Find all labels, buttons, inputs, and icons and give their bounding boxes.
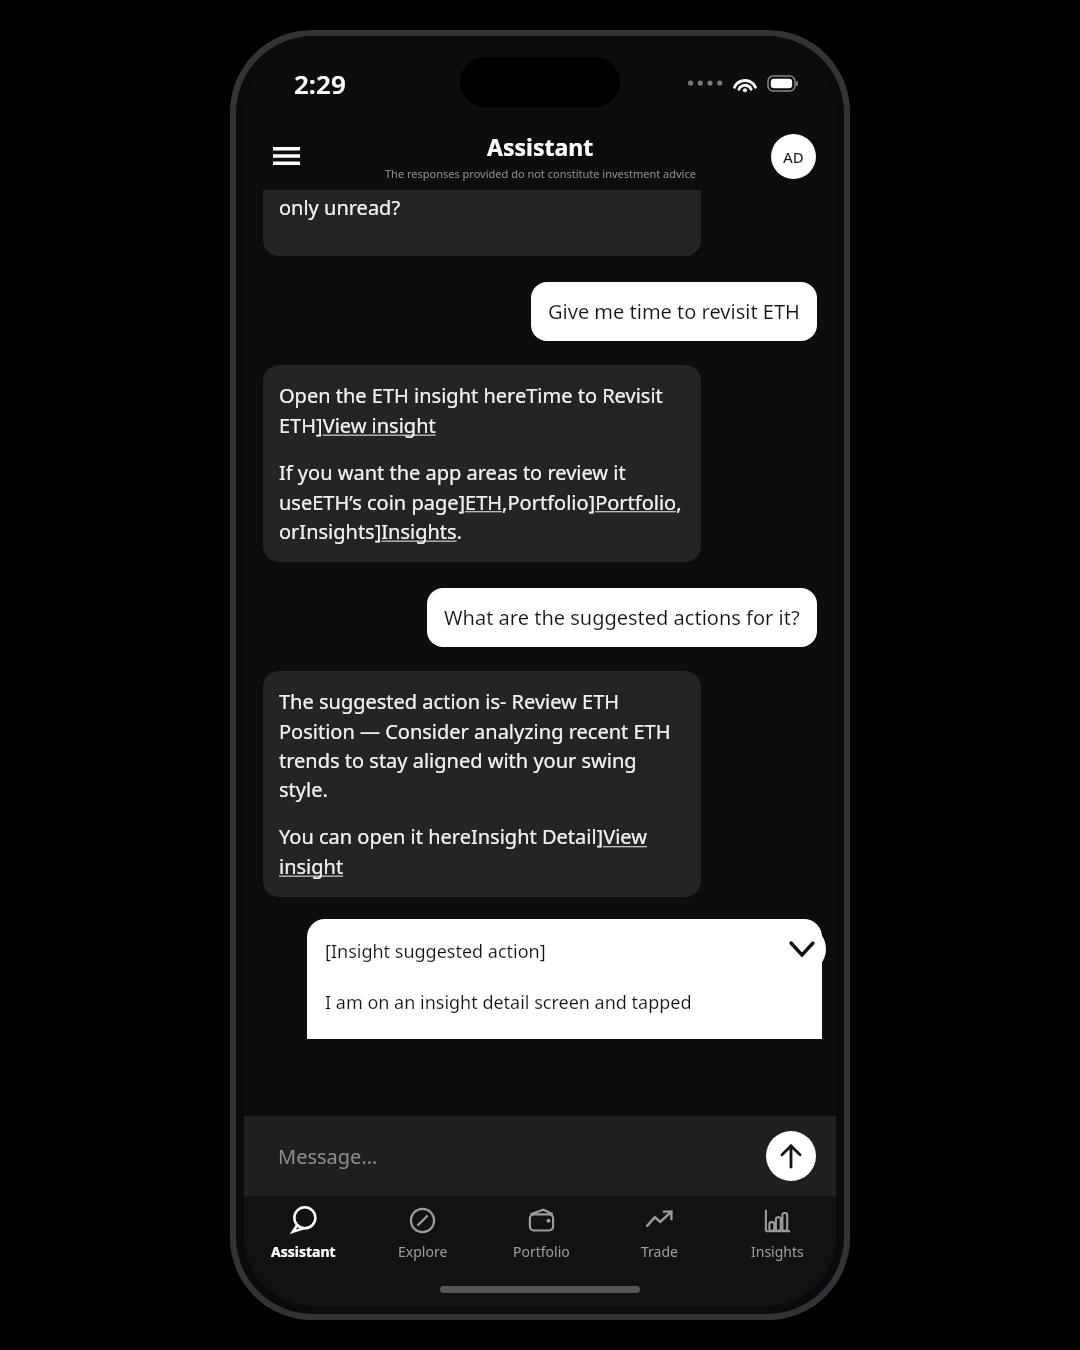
staticText: If you want the app areas to review it u… xyxy=(279,459,685,545)
button[interactable]: Trade xyxy=(600,1196,718,1272)
staticText: AD xyxy=(783,147,804,167)
button[interactable]: only unread? xyxy=(263,190,701,256)
staticText: Open the ETH insight hereTime to Revisit… xyxy=(279,382,685,439)
staticText: What are the suggested actions for it? xyxy=(444,604,800,631)
button[interactable]: Give me time to revisit ETH xyxy=(531,282,817,341)
button[interactable]: Explore xyxy=(363,1196,482,1272)
staticText: I am on an insight detail screen and tap… xyxy=(325,990,692,1015)
button[interactable]: What are the suggested actions for it? xyxy=(427,588,817,647)
staticText: Trade xyxy=(641,1242,678,1261)
button[interactable]: Collapse xyxy=(778,925,826,973)
button[interactable]: Menu xyxy=(262,132,310,180)
staticText: Assistant xyxy=(487,131,594,162)
staticText: Give me time to revisit ETH xyxy=(548,298,800,325)
button[interactable]: Send xyxy=(766,1131,816,1181)
staticText: You can open it hereInsight Detail]View … xyxy=(279,823,685,880)
staticText: only unread? xyxy=(279,194,401,221)
staticText: 2:29 xyxy=(294,66,346,101)
staticText: Portfolio xyxy=(513,1242,570,1261)
staticText: Message... xyxy=(278,1143,378,1170)
button[interactable]: [Insight suggested action] xyxy=(307,919,822,1039)
button[interactable]: Open the ETH insight hereTime to Revisit… xyxy=(263,365,701,562)
staticText: Assistant xyxy=(271,1242,336,1261)
button[interactable]: Insights xyxy=(718,1196,836,1272)
button[interactable]: The suggested action is- Review ETH Posi… xyxy=(263,671,701,897)
staticText: Explore xyxy=(398,1242,448,1261)
button[interactable]: Assistant xyxy=(244,1196,363,1272)
staticText: Insights xyxy=(751,1242,804,1261)
staticText: The responses provided do not constitute… xyxy=(385,166,696,181)
button[interactable]: Portfolio xyxy=(482,1196,600,1272)
staticText: The suggested action is- Review ETH Posi… xyxy=(279,688,685,803)
button[interactable]: AD xyxy=(771,134,816,179)
staticText: [Insight suggested action] xyxy=(325,939,546,964)
